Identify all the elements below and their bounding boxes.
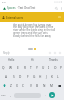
staticText: L	[57, 75, 59, 79]
button[interactable]: More options	[59, 6, 63, 10]
button[interactable]: Send	[49, 92, 55, 98]
staticText: Reply	[3, 51, 10, 55]
button[interactable]: I	[46, 63, 52, 72]
button[interactable]: Attach file	[48, 51, 52, 55]
staticText: F	[27, 75, 29, 79]
button[interactable]: Hello	[0, 56, 22, 63]
button[interactable]: G	[31, 72, 37, 81]
button[interactable]: J	[43, 72, 49, 81]
staticText: O	[54, 66, 57, 70]
staticText: J	[46, 75, 47, 79]
button[interactable]: Y	[34, 63, 40, 72]
button[interactable]: Hi	[22, 56, 43, 63]
button[interactable]: Insert image	[53, 51, 57, 55]
staticText: T	[30, 66, 32, 70]
staticText: U	[42, 66, 45, 70]
button[interactable]: A	[3, 72, 10, 81]
staticText: Spaces	[7, 6, 16, 10]
button[interactable]: Emoji	[58, 51, 62, 55]
button[interactable]: Thanks	[43, 56, 64, 63]
staticText: H	[39, 75, 42, 79]
button[interactable]: V	[27, 81, 34, 90]
staticText: E	[17, 66, 19, 70]
staticText: Hi	[31, 58, 34, 62]
button[interactable]: K	[49, 72, 55, 81]
staticText: W	[9, 66, 12, 70]
button[interactable]: Got it	[58, 16, 61, 18]
staticText: M	[50, 84, 53, 88]
staticText: I	[48, 66, 50, 70]
staticText: Hello	[8, 58, 15, 62]
button[interactable]: T	[28, 63, 34, 72]
button[interactable]: B	[34, 81, 41, 90]
staticText: C	[22, 84, 25, 88]
button[interactable]: ?123	[0, 90, 7, 100]
button[interactable]: Backspace	[55, 81, 64, 90]
staticText: V	[30, 84, 32, 88]
button[interactable]: Shift	[0, 81, 8, 90]
staticText: K	[51, 75, 53, 79]
staticText: the quick brown fox jumps over the lazy …	[13, 23, 55, 38]
button[interactable]: C	[20, 81, 27, 90]
button[interactable]: L	[55, 72, 61, 81]
button[interactable]: P	[58, 63, 64, 72]
button[interactable]: Reaction	[28, 48, 33, 50]
button[interactable]: ,	[7, 90, 14, 100]
button[interactable]: Search	[54, 6, 59, 11]
button[interactable]: F	[24, 72, 31, 81]
staticText: External users	[6, 16, 24, 19]
button[interactable]: O	[52, 63, 58, 72]
staticText: S	[13, 75, 15, 79]
button[interactable]: X	[14, 81, 20, 90]
staticText: · Test Chat Test	[17, 6, 36, 10]
button[interactable]: U	[40, 63, 46, 72]
staticText: Y	[36, 66, 38, 70]
button[interactable]: N	[41, 81, 48, 90]
staticText: .	[45, 93, 46, 97]
button[interactable]: W	[7, 63, 14, 72]
staticText: ?123	[1, 94, 6, 97]
staticText: Thanks	[49, 58, 58, 62]
button[interactable]: S	[10, 72, 17, 81]
staticText: R	[24, 66, 26, 70]
button[interactable]: E	[14, 63, 21, 72]
staticText: B	[36, 84, 39, 88]
staticText: P	[60, 66, 62, 70]
staticText: N	[43, 84, 46, 88]
button[interactable]: Q	[0, 63, 7, 72]
staticText: Z	[10, 84, 12, 88]
button[interactable]: Z	[8, 81, 14, 90]
staticText: D	[19, 75, 22, 79]
staticText: X	[16, 84, 18, 88]
button[interactable]: M	[48, 81, 55, 90]
staticText: A	[5, 75, 8, 79]
staticText: Q	[2, 66, 5, 70]
staticText: 9:41	[2, 1, 7, 4]
staticText: G	[33, 75, 36, 79]
staticText: ,	[10, 93, 11, 97]
button[interactable]: R	[21, 63, 28, 72]
button[interactable]: H	[37, 72, 43, 81]
button[interactable]: D	[17, 72, 24, 81]
